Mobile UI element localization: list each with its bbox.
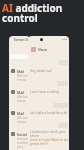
button[interactable]: Mail (11, 111, 30, 124)
staticText: Afternoon messa (17, 95, 30, 103)
button[interactable]: Mail (11, 69, 30, 82)
staticText: Let's take a break for a bit (30, 111, 68, 115)
staticText: Nova (38, 47, 47, 52)
staticText: I can't stop scrolling (30, 90, 60, 94)
staticText: Mail (17, 90, 25, 95)
staticText: Mail (17, 69, 25, 74)
staticText: AI addiction control (2, 1, 63, 25)
staticText: Mail (17, 111, 25, 116)
button[interactable]: Social (11, 132, 30, 150)
staticText: Screen time (14, 38, 30, 42)
button[interactable]: Nova (31, 47, 47, 52)
staticText: Afternoon messa (17, 116, 30, 124)
button[interactable]: Mail (11, 90, 30, 103)
staticText: Afternoon messa (17, 74, 30, 82)
staticText: Hey, what's up? (30, 69, 53, 73)
staticText: less time scrolling your feed today (17, 137, 30, 150)
staticText: I noticed you check your phone more at n… (30, 130, 69, 146)
staticText: Social (17, 132, 27, 137)
